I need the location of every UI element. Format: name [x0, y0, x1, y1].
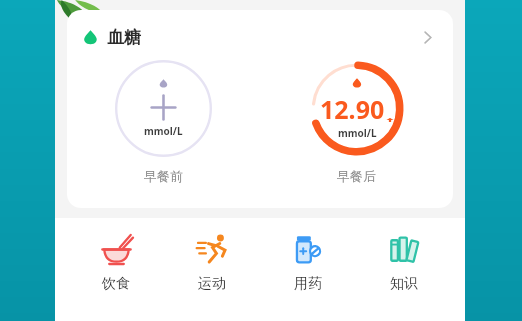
staticText: 早餐前 — [144, 168, 183, 184]
staticText: 饮食 — [102, 275, 130, 293]
button[interactable]: 运动 — [177, 233, 247, 293]
staticText: mmol/L — [338, 126, 377, 140]
button[interactable]: 血糖 — [67, 10, 453, 208]
staticText: 早餐后 — [337, 168, 376, 184]
button[interactable]: 用药 — [273, 233, 343, 293]
button[interactable]: 饮食 — [81, 233, 151, 293]
button[interactable]: 12.90 — [260, 60, 453, 184]
button[interactable]: Open blood glucose details — [413, 23, 441, 51]
button[interactable]: 知识 — [369, 233, 439, 293]
staticText: 血糖 — [107, 27, 141, 48]
button[interactable]: mmol/L — [67, 60, 260, 184]
staticText: 用药 — [294, 275, 322, 293]
staticText: 12.90 — [320, 92, 385, 126]
staticText: mmol/L — [144, 124, 183, 138]
staticText: 运动 — [198, 275, 226, 293]
staticText: 知识 — [390, 275, 418, 293]
